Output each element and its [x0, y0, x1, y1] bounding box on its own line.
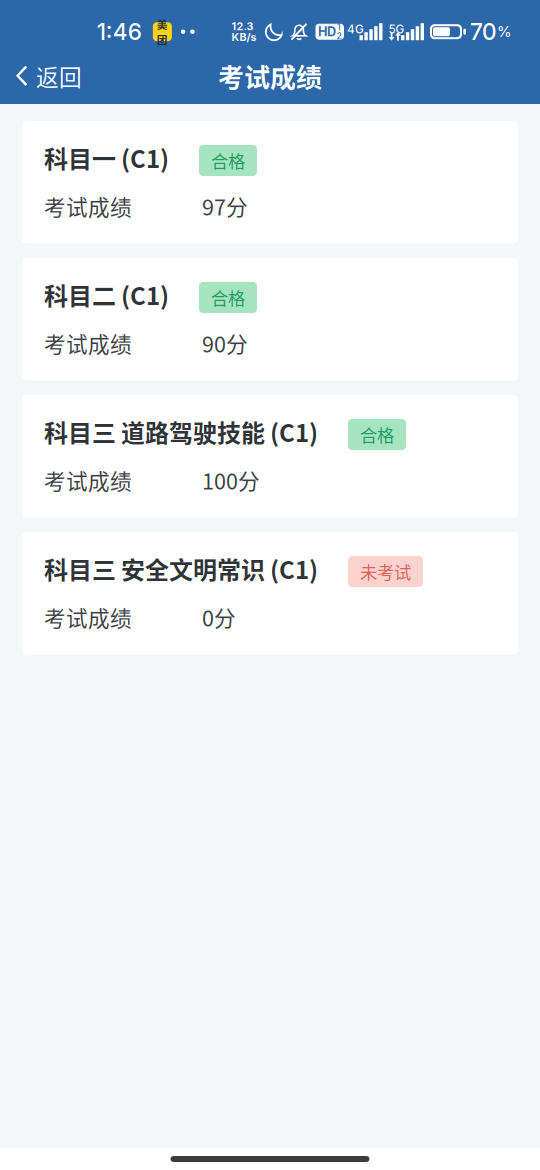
staticText: 未考试: [360, 559, 411, 584]
staticText: 科目一 (C1): [44, 140, 169, 175]
staticText: 考试成绩: [44, 327, 132, 359]
staticText: 2: [336, 31, 341, 41]
staticText: %: [497, 23, 512, 40]
staticText: 考试成绩: [44, 464, 132, 496]
button[interactable]: 返回: [0, 48, 100, 104]
button[interactable]: 科目二 (C1): [22, 258, 518, 380]
staticText: 97分: [202, 190, 248, 222]
staticText: 考试成绩: [44, 190, 132, 222]
staticText: 90分: [202, 327, 248, 359]
button[interactable]: 科目一 (C1): [22, 121, 518, 243]
staticText: 1: [337, 22, 341, 32]
staticText: 合格: [360, 422, 394, 447]
staticText: 考试成绩: [44, 601, 132, 633]
staticText: 4G: [347, 22, 364, 36]
staticText: 12.3: [231, 20, 253, 33]
staticText: HD: [318, 24, 336, 39]
staticText: 0分: [202, 601, 236, 633]
staticText: 科目三 道路驾驶技能 (C1): [44, 414, 318, 449]
staticText: 美团: [157, 16, 168, 47]
staticText: 合格: [211, 285, 245, 310]
staticText: 考试成绩: [218, 57, 322, 95]
button[interactable]: 科目三 安全文明常识 (C1): [22, 532, 518, 654]
staticText: KB/s: [231, 31, 256, 44]
staticText: 科目二 (C1): [44, 277, 169, 312]
staticText: 100分: [202, 464, 260, 496]
staticText: 5G: [388, 22, 404, 36]
button[interactable]: 科目三 道路驾驶技能 (C1): [22, 395, 518, 517]
staticText: 70: [470, 18, 497, 45]
staticText: 合格: [211, 148, 245, 173]
staticText: 返回: [36, 60, 82, 92]
staticText: 1:46: [97, 18, 142, 45]
staticText: 科目三 安全文明常识 (C1): [44, 551, 318, 586]
